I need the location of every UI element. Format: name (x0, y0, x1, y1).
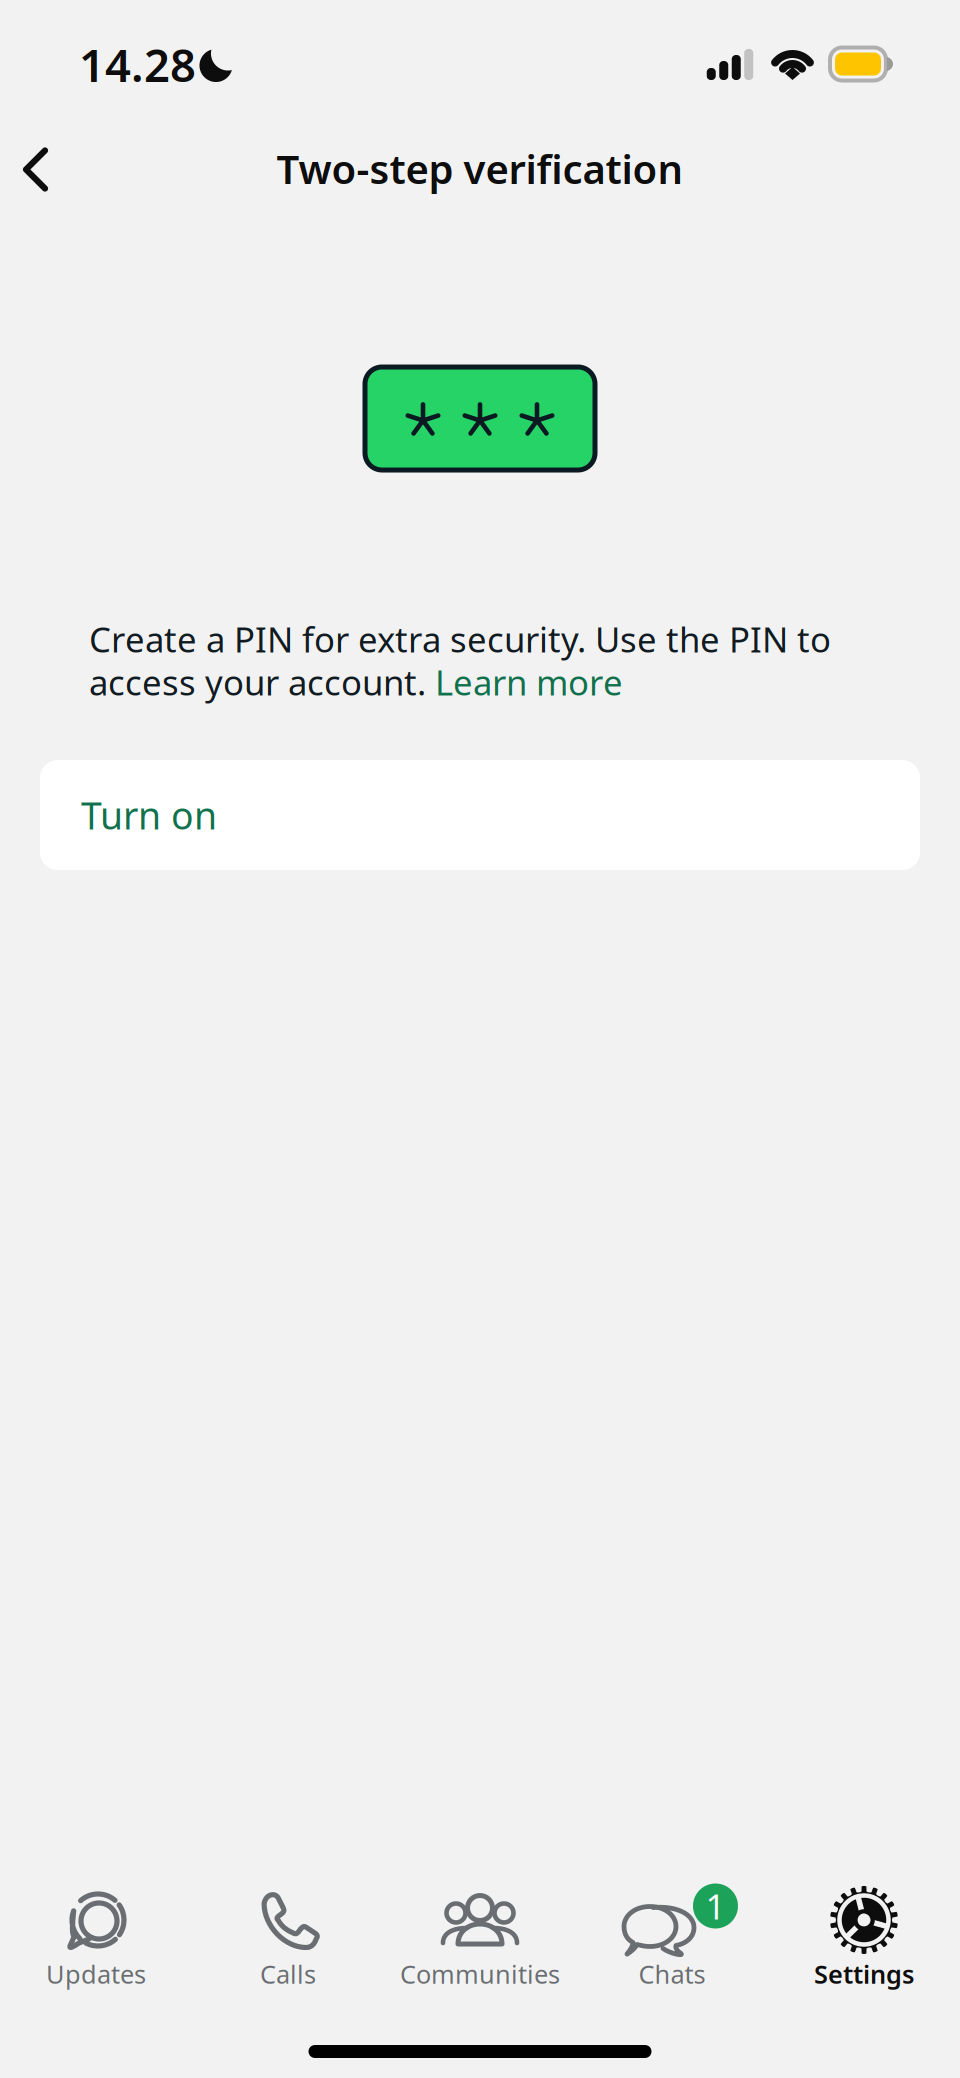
staticText: Communities (400, 1957, 560, 1991)
staticText: Updates (46, 1957, 146, 1991)
staticText: Settings (814, 1957, 914, 1991)
button[interactable]: Settings (768, 1883, 960, 1995)
button[interactable]: 1 (576, 1883, 768, 1995)
staticText: Learn more (435, 659, 623, 705)
button[interactable]: Calls (192, 1883, 384, 1995)
button[interactable]: Back (0, 126, 84, 210)
staticText: Calls (260, 1957, 316, 1991)
button[interactable]: Communities (384, 1883, 576, 1995)
button[interactable]: Updates (0, 1883, 192, 1995)
staticText: Two-step verification (276, 142, 683, 195)
staticText: Chats (638, 1957, 705, 1991)
staticText: Create a PIN for extra security. Use the… (89, 616, 831, 662)
staticText: access your account. (89, 659, 435, 705)
staticText: 14.28 (79, 34, 196, 95)
staticText: Turn on (81, 790, 217, 840)
staticText: 1 (705, 1883, 725, 1929)
button[interactable]: Turn on (40, 760, 920, 870)
